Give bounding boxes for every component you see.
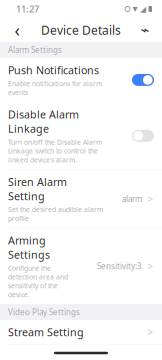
staticText: 11:27 (16, 3, 39, 15)
staticText: Push Notifications (8, 63, 99, 77)
staticText: Set the desired audible alarm profile (8, 205, 103, 223)
staticText: ⌁ (140, 22, 149, 38)
staticText: ‹ (14, 18, 19, 41)
staticText: Stream Setting (8, 325, 84, 339)
staticText: Device Details (41, 22, 121, 38)
button[interactable]: Back (4, 18, 30, 42)
staticText: ◢ (140, 4, 146, 14)
staticText: Sensitivity:3 (97, 261, 142, 271)
staticText: > (147, 259, 153, 273)
staticText: Custom Audio and Video Encryption (8, 350, 103, 360)
button[interactable]: Custom Audio and Video Encryption (0, 345, 162, 360)
staticText: Turn on/off the Disable Alarm Linkage sw… (8, 138, 102, 164)
staticText: alarm (122, 193, 142, 204)
button[interactable]: Disable Alarm Linkage (0, 102, 162, 169)
button[interactable]: Share (132, 18, 158, 42)
staticText: ▼ (132, 5, 137, 13)
staticText: Arming Settings (8, 233, 50, 262)
staticText: Disable Alarm Linkage (8, 107, 79, 136)
button[interactable]: Arming Settings (0, 228, 162, 304)
staticText: Configure the detection area and sensiti… (8, 264, 68, 299)
staticText: Video Play Settings (8, 307, 80, 317)
button[interactable]: Stream Setting (0, 320, 162, 344)
button[interactable]: Siren Alarm Setting (0, 170, 162, 228)
staticText: > (147, 325, 153, 339)
staticText: Alarm Settings (8, 45, 62, 55)
staticText: Siren Alarm Setting (8, 175, 67, 203)
button[interactable]: Push Notifications (0, 58, 162, 102)
staticText: Enable notifications for alarm events (8, 79, 102, 97)
staticText: > (147, 192, 153, 206)
